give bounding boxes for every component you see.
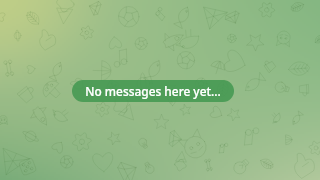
staticText: No messages here yet... [85,83,221,99]
button[interactable]: No messages here yet... [72,80,234,102]
